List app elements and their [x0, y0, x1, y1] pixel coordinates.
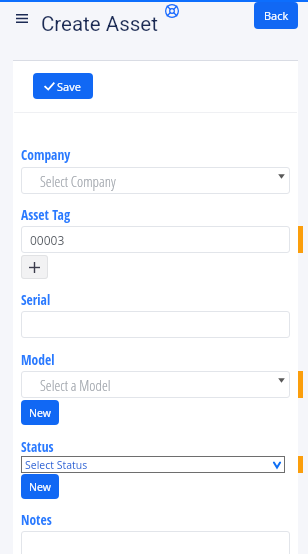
- button[interactable]: 00003: [21, 226, 290, 253]
- button[interactable]: Help: [163, 2, 181, 20]
- button[interactable]: Add asset tag: [21, 255, 48, 279]
- staticText: Asset Tag: [21, 206, 71, 224]
- button[interactable]: New: [21, 474, 59, 499]
- staticText: New: [29, 406, 51, 420]
- staticText: 00003: [30, 232, 65, 248]
- button[interactable]: Select Company: [21, 167, 290, 194]
- button[interactable]: Select Status: [21, 456, 285, 473]
- button[interactable]: Save: [33, 73, 93, 99]
- staticText: Company: [21, 146, 71, 164]
- staticText: Notes: [21, 511, 52, 529]
- staticText: Back: [264, 8, 289, 23]
- staticText: Save: [57, 79, 81, 94]
- button[interactable]: Menu: [13, 10, 30, 27]
- staticText: Status: [21, 438, 54, 456]
- button[interactable]: [21, 531, 290, 554]
- staticText: Model: [21, 351, 55, 369]
- staticText: Select Status: [25, 458, 88, 472]
- staticText: Serial: [21, 291, 51, 309]
- button[interactable]: Back: [254, 2, 298, 29]
- button[interactable]: New: [21, 400, 59, 425]
- button[interactable]: [21, 311, 290, 338]
- staticText: Create Asset: [41, 12, 158, 36]
- button[interactable]: Select a Model: [21, 371, 290, 398]
- staticText: New: [29, 480, 51, 494]
- staticText: Select a Model: [40, 375, 111, 395]
- staticText: Select Company: [40, 171, 116, 191]
